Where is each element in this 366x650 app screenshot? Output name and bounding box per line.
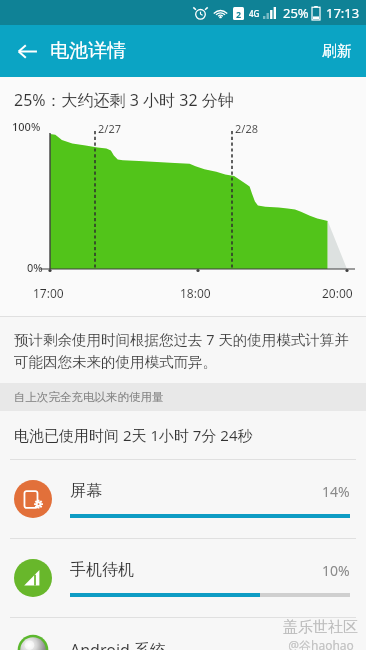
button[interactable]: 刷新 xyxy=(308,25,366,77)
staticText: 屏幕 xyxy=(70,481,322,501)
staticText: 2/27 xyxy=(98,121,121,136)
staticText: 100% xyxy=(12,119,41,134)
staticText: 自上次完全充电以来的使用量 xyxy=(14,390,164,404)
staticText: 25% xyxy=(283,4,309,22)
button[interactable]: Android 系统 xyxy=(0,618,366,650)
staticText: 17:00 xyxy=(33,285,64,301)
staticText: 2 xyxy=(236,8,242,20)
button[interactable]: 屏幕 xyxy=(0,460,366,538)
staticText: Android 系统 xyxy=(70,639,167,650)
button[interactable]: Back xyxy=(4,28,50,74)
staticText: 20:00 xyxy=(322,285,353,301)
staticText: 2/28 xyxy=(235,121,258,136)
button[interactable]: 手机待机 xyxy=(0,539,366,617)
staticText: 电池详情 xyxy=(50,39,126,63)
staticText: 17:13 xyxy=(326,4,360,22)
staticText: 手机待机 xyxy=(70,560,322,580)
staticText: 18:00 xyxy=(180,285,211,301)
staticText: 盖乐世社区 xyxy=(283,618,358,637)
staticText: 预计剩余使用时间根据您过去 7 天的使用模式计算并可能因您未来的使用模式而异。 xyxy=(14,329,352,371)
staticText: 14% xyxy=(322,482,350,501)
staticText: 刷新 xyxy=(322,42,352,61)
staticText: @谷haohao xyxy=(288,637,354,650)
staticText: 25%：大约还剩 3 小时 32 分钟 xyxy=(14,89,234,111)
staticText: 0% xyxy=(27,260,43,275)
staticText: 电池已使用时间 2天 1小时 7分 24秒 xyxy=(14,425,253,445)
staticText: 4G xyxy=(249,8,260,19)
staticText: 10% xyxy=(322,561,350,580)
